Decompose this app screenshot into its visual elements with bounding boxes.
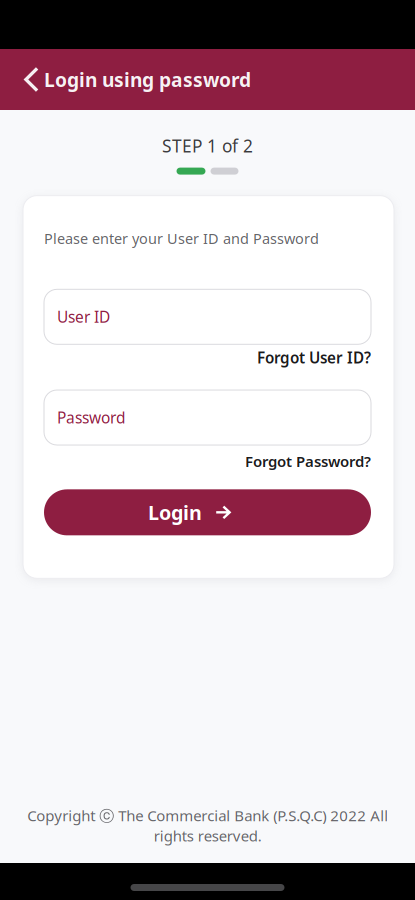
staticText: Login — [148, 499, 202, 526]
button[interactable]: Forgot User ID? — [44, 344, 371, 368]
button[interactable]: Back — [0, 49, 44, 110]
button[interactable]: User ID — [44, 289, 371, 344]
staticText: User ID — [57, 306, 110, 327]
staticText: Please enter your User ID and Password — [44, 229, 319, 248]
staticText: Password — [57, 407, 126, 428]
staticText: STEP 1 of 2 — [162, 134, 253, 158]
staticText: Login using password — [44, 66, 251, 93]
staticText: Forgot Password? — [245, 451, 371, 471]
button[interactable]: Login — [44, 489, 371, 535]
button[interactable]: Forgot Password? — [44, 445, 371, 471]
button[interactable]: Password — [44, 390, 371, 445]
staticText: Forgot User ID? — [257, 347, 371, 368]
staticText: Copyright ⓒ The Commercial Bank (P.S.Q.C… — [27, 805, 388, 846]
